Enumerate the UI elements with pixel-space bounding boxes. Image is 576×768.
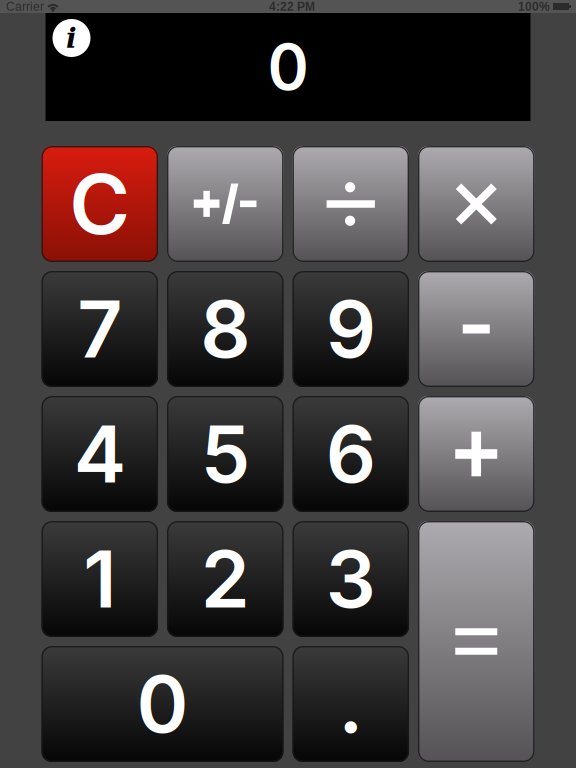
button[interactable]: 2 <box>167 521 283 637</box>
staticText: 4 <box>74 406 126 502</box>
button[interactable]: Equals <box>418 521 534 762</box>
button[interactable]: 8 <box>167 271 283 387</box>
button[interactable]: 9 <box>292 271 409 387</box>
button[interactable]: 6 <box>292 396 409 512</box>
button[interactable]: . <box>292 646 409 762</box>
button[interactable]: Info <box>52 19 90 57</box>
staticText: Carrier <box>6 0 44 13</box>
staticText: 0 <box>136 656 188 752</box>
staticText: 8 <box>200 281 250 377</box>
staticText: . <box>338 656 363 752</box>
button[interactable]: Divide <box>292 146 409 262</box>
button[interactable]: C <box>41 146 158 262</box>
button[interactable]: 7 <box>41 271 158 387</box>
staticText: 1 <box>83 531 116 627</box>
staticText: i <box>66 22 77 54</box>
button[interactable]: 5 <box>167 396 283 512</box>
button[interactable]: Multiply <box>418 146 534 262</box>
staticText: 2 <box>201 531 250 627</box>
button[interactable]: 0 <box>41 646 283 762</box>
button[interactable]: Subtract <box>418 271 534 387</box>
button[interactable]: 3 <box>292 521 409 637</box>
staticText: 100% <box>518 0 550 13</box>
button[interactable]: 4 <box>41 396 158 512</box>
staticText: 5 <box>201 406 250 502</box>
button[interactable]: Plus or minus <box>167 146 283 262</box>
staticText: 9 <box>326 281 376 377</box>
staticText: 3 <box>326 531 376 627</box>
staticText: C <box>69 154 130 254</box>
button[interactable]: 1 <box>41 521 158 637</box>
button[interactable]: Add <box>418 396 534 512</box>
staticText: 6 <box>326 406 376 502</box>
staticText: 4:22 PM <box>269 0 315 13</box>
staticText: 0 <box>267 29 308 105</box>
staticText: 7 <box>77 281 122 377</box>
